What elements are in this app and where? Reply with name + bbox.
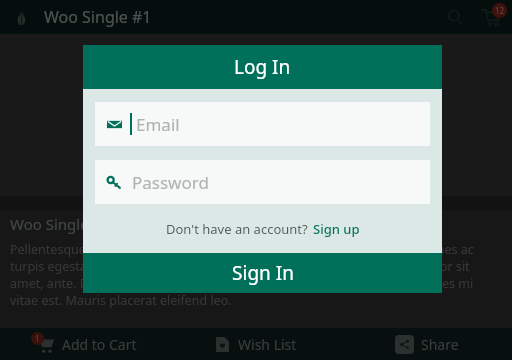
button[interactable]: 1 bbox=[0, 328, 170, 360]
staticText: Don't have an account? bbox=[166, 220, 308, 238]
staticText: Wish List bbox=[238, 335, 297, 354]
button[interactable]: Password bbox=[95, 160, 430, 204]
staticText: Email bbox=[136, 113, 180, 136]
button[interactable]: Sign In bbox=[83, 253, 442, 293]
staticText: 1 bbox=[35, 333, 40, 344]
button[interactable]: Cart bbox=[474, 0, 508, 34]
staticText: Add to Cart bbox=[62, 335, 137, 354]
staticText: Sign In bbox=[232, 260, 294, 286]
button[interactable]: Wish List bbox=[170, 328, 341, 360]
staticText: Share bbox=[421, 335, 459, 354]
staticText: Woo Single #1 bbox=[10, 214, 111, 234]
button[interactable]: Email bbox=[95, 102, 430, 146]
staticText: Log In bbox=[234, 54, 291, 80]
button[interactable]: Share bbox=[341, 328, 512, 360]
button[interactable]: Menu bbox=[10, 6, 32, 28]
staticText: Pellentesque habitant morbi tristique se… bbox=[10, 241, 502, 309]
staticText: Password bbox=[132, 171, 209, 194]
staticText: 12 bbox=[495, 5, 505, 16]
button[interactable]: Sign up bbox=[313, 220, 360, 238]
staticText: Woo Single #1 bbox=[44, 6, 152, 28]
staticText: Sign up bbox=[313, 220, 360, 238]
